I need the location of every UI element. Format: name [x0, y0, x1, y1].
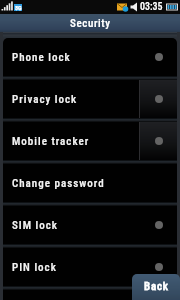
- button[interactable]: PIN lock toggle: [3, 248, 177, 286]
- staticText: Change password: [12, 177, 105, 190]
- button[interactable]: Mobile tracker toggle: [3, 122, 177, 160]
- staticText: Mobile tracker: [12, 135, 90, 148]
- staticText: 3G: [15, 4, 22, 11]
- staticText: Security: [70, 17, 111, 30]
- staticText: Back: [144, 280, 169, 293]
- button[interactable]: Change password: [3, 164, 177, 202]
- staticText: Phone lock: [12, 51, 71, 64]
- button[interactable]: Phone lock toggle: [3, 38, 177, 76]
- button[interactable]: Privacy lock toggle: [3, 80, 177, 118]
- button[interactable]: SIM lock toggle: [3, 206, 177, 244]
- other: Mobile tracker toggle: [155, 137, 163, 145]
- staticText: 03:35: [140, 1, 163, 13]
- staticText: Privacy lock: [12, 93, 78, 106]
- other: Phone lock toggle: [155, 53, 163, 61]
- other: PIN lock toggle: [155, 263, 163, 271]
- button[interactable]: Back: [132, 274, 180, 300]
- staticText: SIM lock: [12, 219, 58, 232]
- other: Privacy lock toggle: [155, 95, 163, 103]
- other: SIM lock toggle: [155, 221, 163, 229]
- staticText: PIN lock: [12, 261, 57, 274]
